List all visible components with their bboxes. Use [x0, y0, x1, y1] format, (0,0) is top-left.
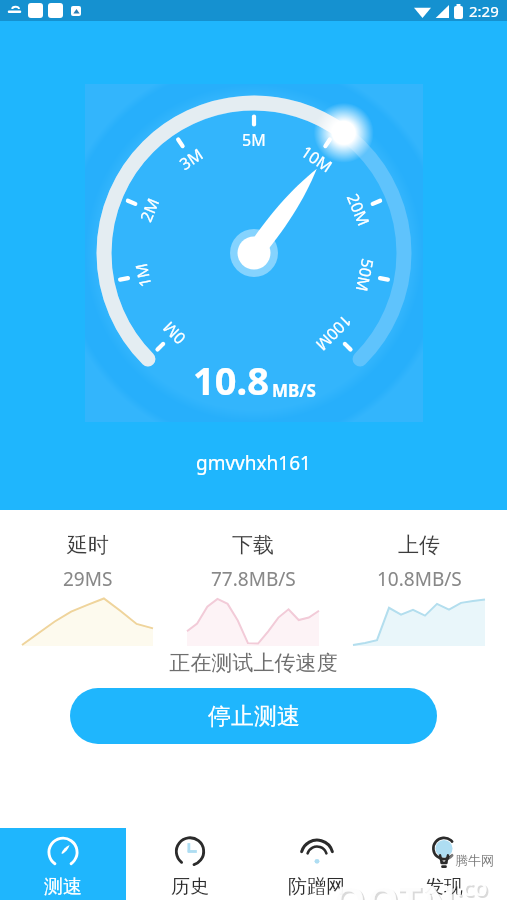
button[interactable]: 防蹭网	[253, 828, 380, 900]
staticText: QQTN	[334, 873, 458, 900]
staticText: 2:29	[469, 1, 499, 21]
staticText: QQTN	[332, 871, 456, 900]
staticText: gmvvhxh161	[196, 450, 311, 476]
staticText: 上传	[398, 532, 440, 558]
button[interactable]: 发现	[380, 828, 507, 900]
staticText: 防蹭网	[288, 875, 345, 899]
staticText: 历史	[171, 875, 209, 899]
staticText: 发现	[425, 875, 463, 899]
staticText: 延时	[67, 532, 109, 558]
staticText: 10.8MB/S	[377, 566, 462, 592]
button[interactable]: 测速	[0, 828, 126, 900]
staticText: 下载	[232, 532, 274, 558]
staticText: 77.8MB/S	[211, 566, 296, 592]
staticText: 腾牛网	[455, 852, 494, 868]
staticText: 测速	[44, 875, 82, 899]
staticText: .com	[456, 871, 507, 898]
staticText: 10.8	[193, 354, 269, 406]
button[interactable]: 历史	[126, 828, 253, 900]
button[interactable]: 停止测速	[70, 688, 437, 744]
staticText: 正在测试上传速度	[0, 650, 507, 676]
staticText: 29MS	[63, 566, 113, 592]
staticText: 停止测速	[208, 702, 300, 731]
staticText: MB/S	[272, 379, 316, 402]
staticText: .com	[458, 873, 507, 898]
